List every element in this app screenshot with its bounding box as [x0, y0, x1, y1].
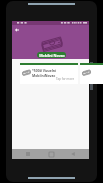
button[interactable]: Back	[12, 25, 22, 35]
staticText: MobilniNovac	[32, 73, 56, 78]
button[interactable]: Recents	[21, 149, 35, 159]
staticText: Tap for more	[56, 77, 75, 81]
button[interactable]: *500# Vizuelni	[20, 63, 78, 84]
button[interactable]: Back	[66, 149, 80, 159]
staticText: *500# Vizuelni	[32, 68, 57, 73]
button[interactable]: Mobilni Novac	[37, 52, 66, 58]
staticText: Mobilni Novac	[39, 53, 65, 58]
button[interactable]	[80, 63, 103, 84]
button[interactable]: Home	[44, 149, 58, 159]
